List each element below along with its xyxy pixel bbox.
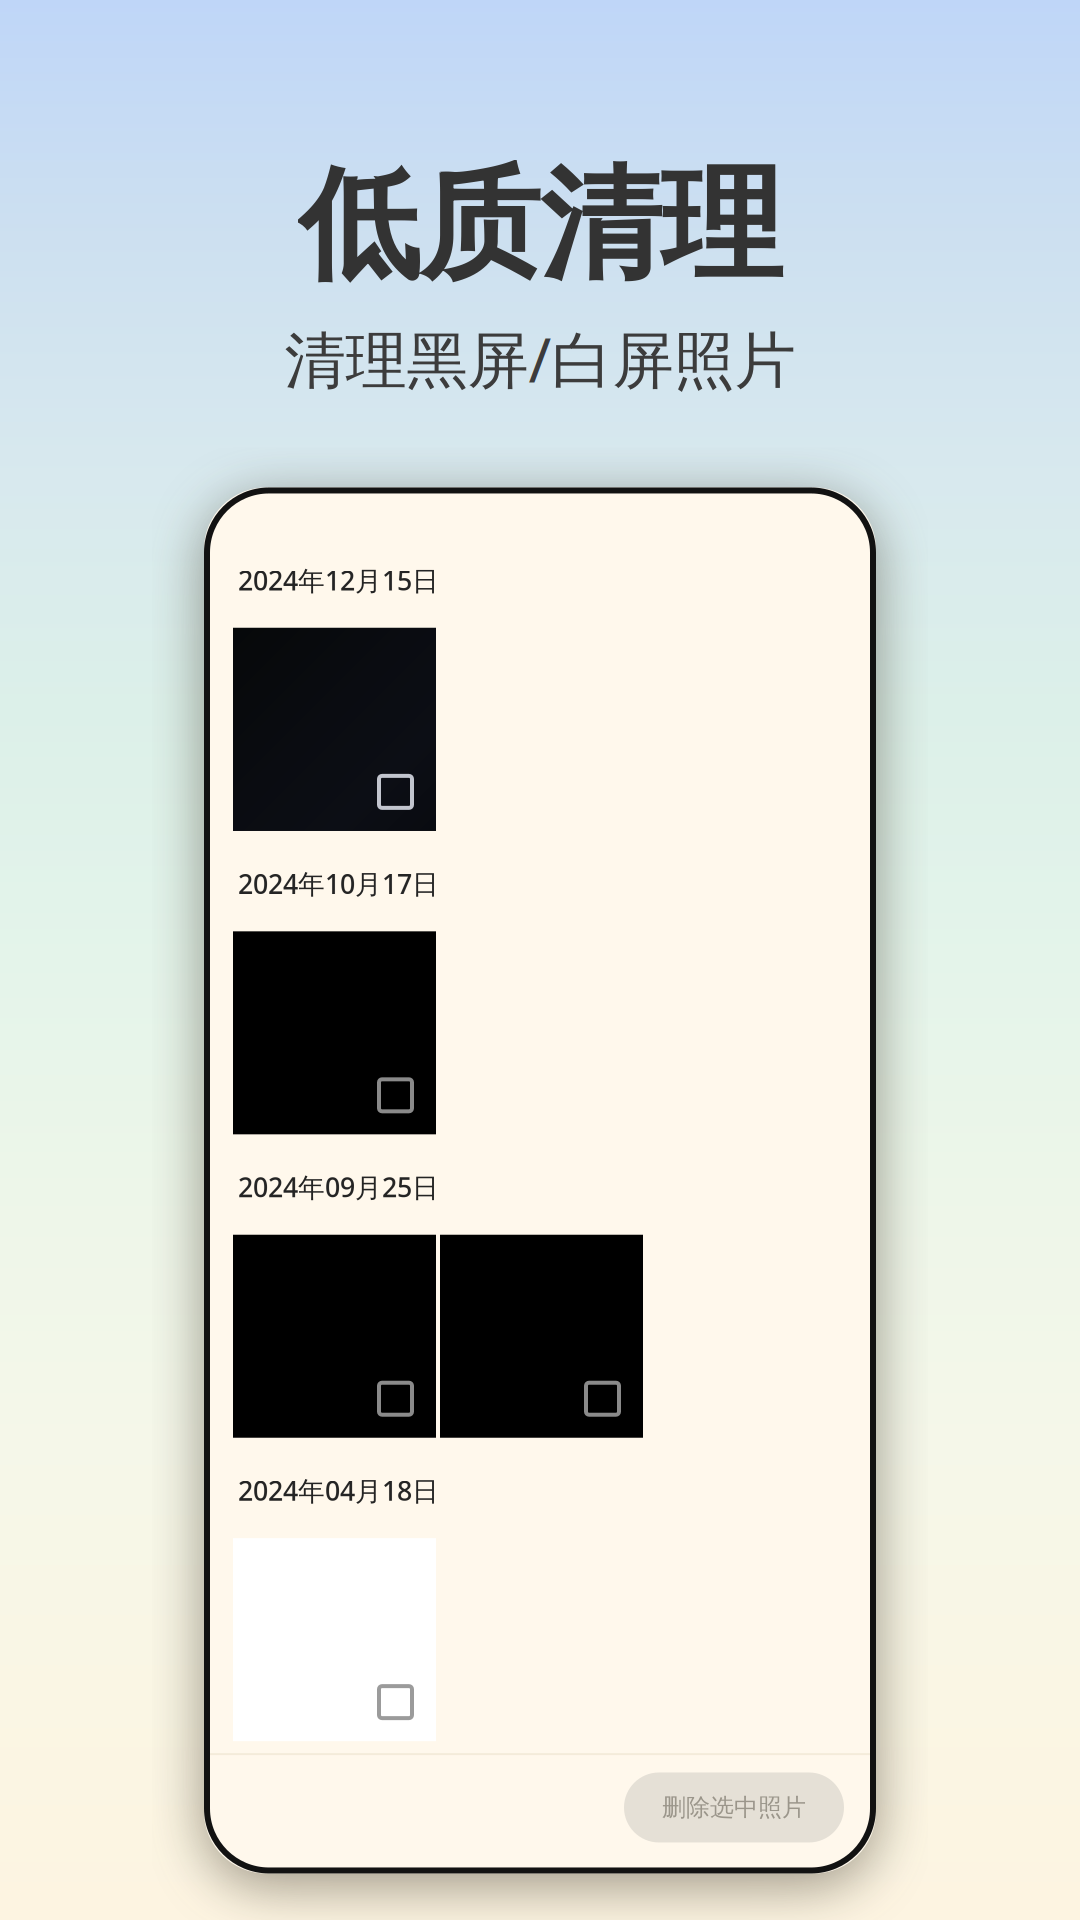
staticText: 2024年12月15日 — [238, 562, 439, 598]
button[interactable]: 删除选中照片 — [624, 1772, 844, 1842]
button[interactable]: Select photo — [233, 1235, 436, 1438]
staticText: 2024年10月17日 — [238, 866, 439, 901]
staticText: 2024年04月18日 — [238, 1473, 439, 1508]
button[interactable]: Select photo — [233, 1538, 436, 1741]
button[interactable]: Select photo — [233, 931, 436, 1134]
button[interactable]: Select photo — [440, 1235, 643, 1438]
button[interactable]: Select photo — [233, 628, 436, 831]
staticText: 低质清理 — [298, 151, 782, 300]
staticText: 删除选中照片 — [662, 1793, 806, 1822]
staticText: 2024年09月25日 — [238, 1169, 439, 1205]
staticText: 清理黑屏/白屏照片 — [284, 318, 795, 399]
